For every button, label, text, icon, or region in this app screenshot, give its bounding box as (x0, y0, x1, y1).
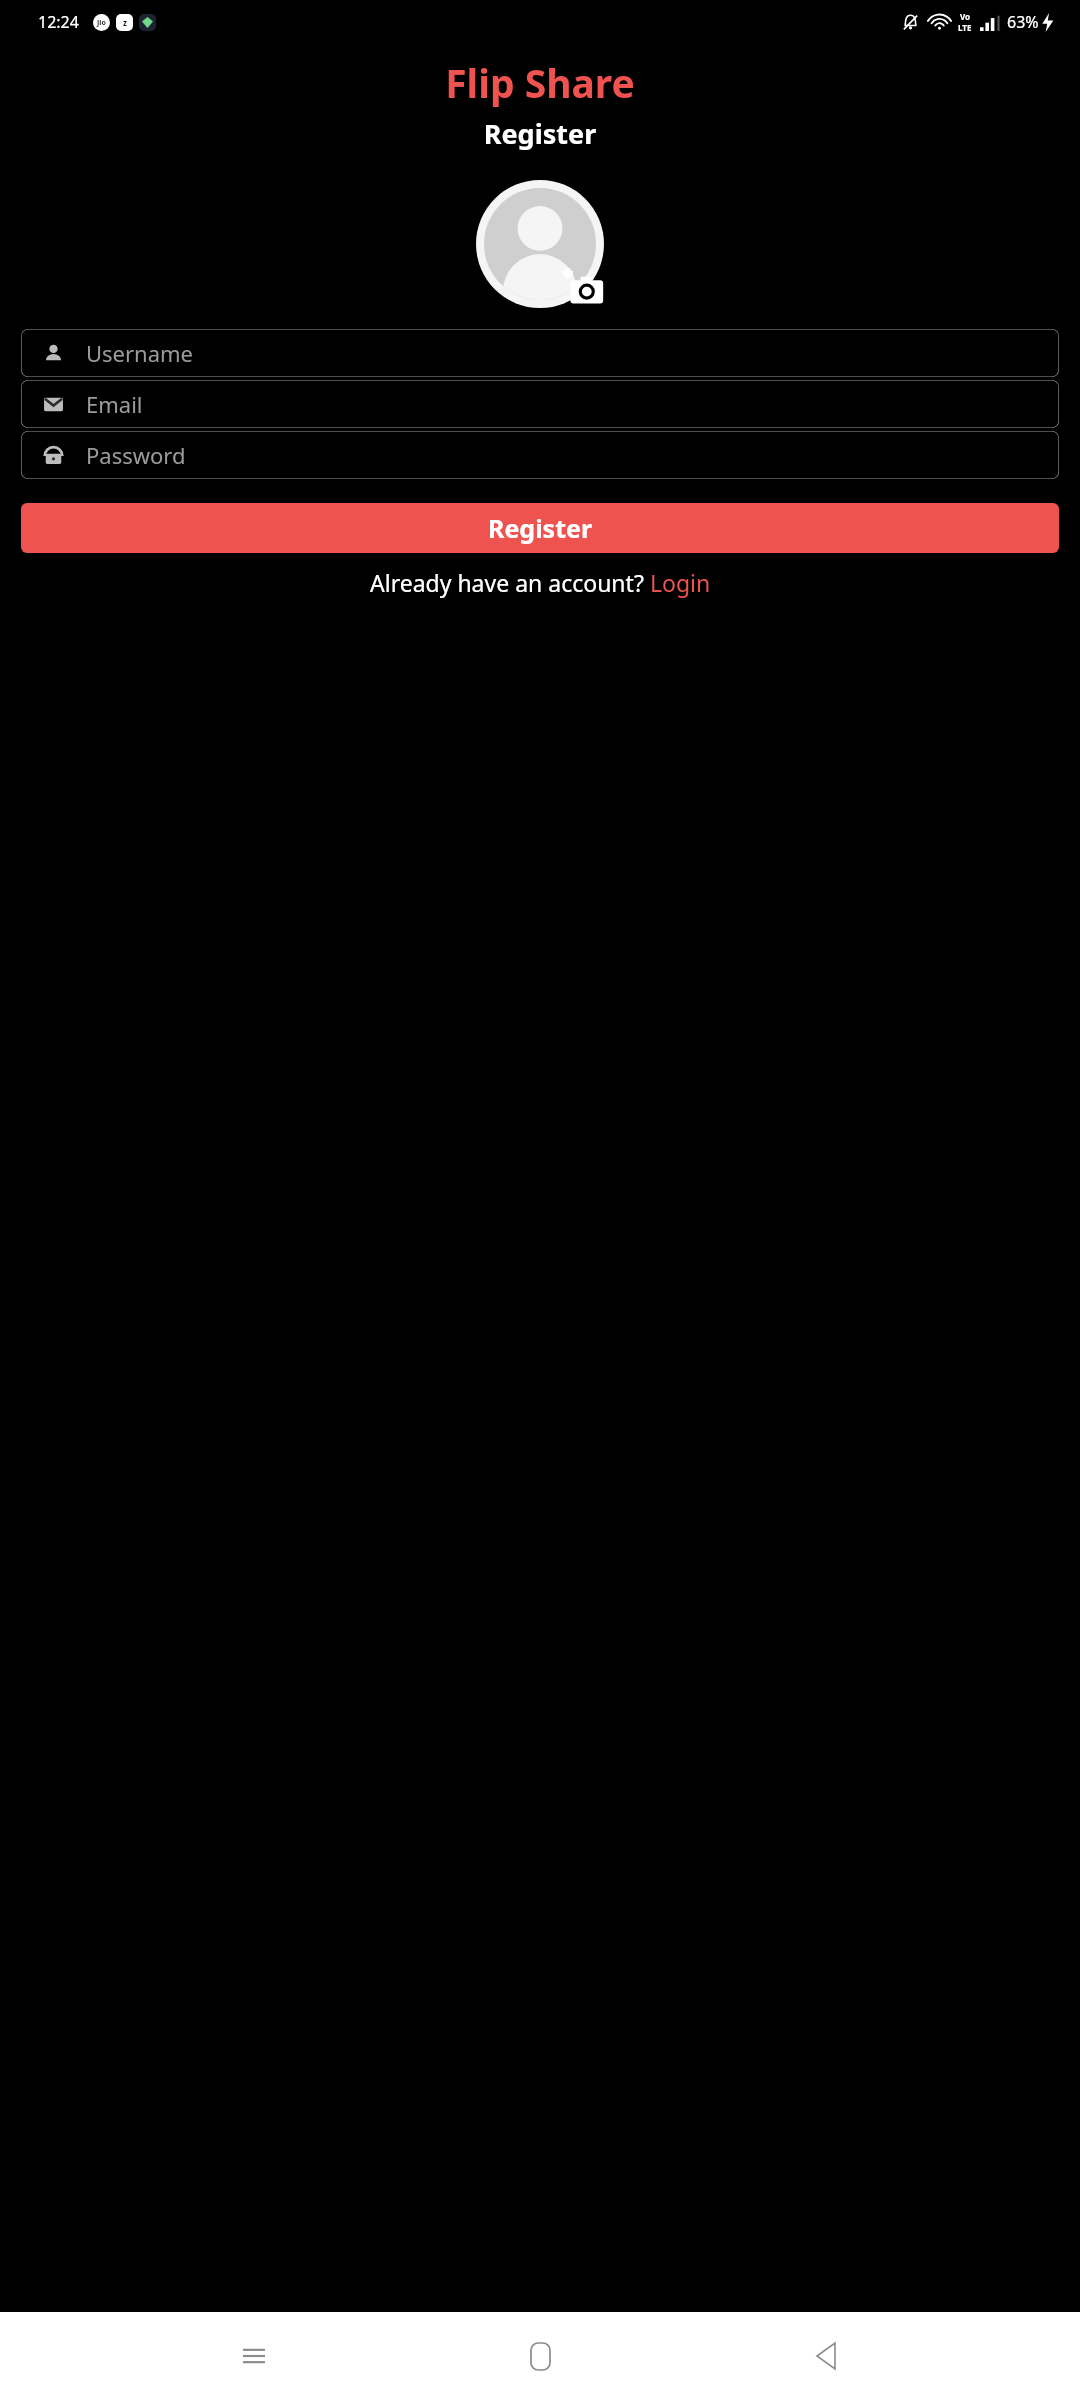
staticText: LTE (958, 22, 972, 33)
staticText: Register (0, 115, 1080, 152)
staticText: Password (86, 440, 186, 470)
button[interactable]: Username (21, 329, 1059, 377)
staticText: Jio (97, 18, 106, 28)
staticText: 12:24 (38, 11, 79, 33)
staticText: Vo (960, 11, 971, 22)
staticText: Register (488, 511, 593, 545)
button[interactable]: Recents (222, 2324, 286, 2388)
staticText: Already have an account? (370, 567, 650, 598)
button[interactable]: Login (650, 567, 711, 598)
button[interactable]: Back (794, 2324, 858, 2388)
staticText: Username (86, 338, 194, 368)
button[interactable]: Password (21, 431, 1059, 479)
staticText: Flip Share (0, 56, 1080, 109)
staticText: 63% (1007, 11, 1039, 33)
button[interactable]: Home (508, 2324, 572, 2388)
button[interactable]: Email (21, 380, 1059, 428)
staticText: Login (650, 567, 711, 598)
staticText: Email (86, 389, 143, 419)
staticText: z (123, 17, 127, 28)
button[interactable]: Change profile photo (476, 180, 604, 308)
button[interactable]: Register (21, 503, 1059, 553)
